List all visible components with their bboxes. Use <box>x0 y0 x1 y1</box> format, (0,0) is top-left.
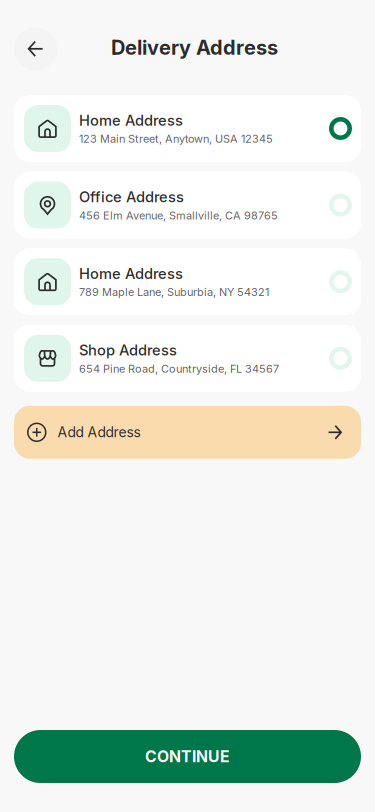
button[interactable]: Add Address <box>14 406 361 459</box>
staticText: Delivery Address <box>111 35 278 60</box>
staticText: Home Address <box>79 111 183 129</box>
staticText: 456 Elm Avenue, Smallville, CA 98765 <box>79 209 278 222</box>
button[interactable]: Back <box>14 27 57 70</box>
staticText: 789 Maple Lane, Suburbia, NY 54321 <box>79 285 269 299</box>
staticText: Office Address <box>79 188 184 206</box>
button[interactable]: Home Address <box>14 248 361 315</box>
staticText: Add Address <box>57 424 140 441</box>
staticText: Home Address <box>79 265 183 282</box>
staticText: 123 Main Street, Anytown, USA 12345 <box>79 132 273 145</box>
staticText: CONTINUE <box>145 747 230 766</box>
button[interactable]: Shop Address <box>14 325 361 392</box>
staticText: Shop Address <box>79 341 177 359</box>
button[interactable]: Home Address <box>14 95 361 162</box>
staticText: 654 Pine Road, Countryside, FL 34567 <box>79 362 279 375</box>
button[interactable]: CONTINUE <box>14 730 361 783</box>
button[interactable]: Office Address <box>14 172 361 239</box>
